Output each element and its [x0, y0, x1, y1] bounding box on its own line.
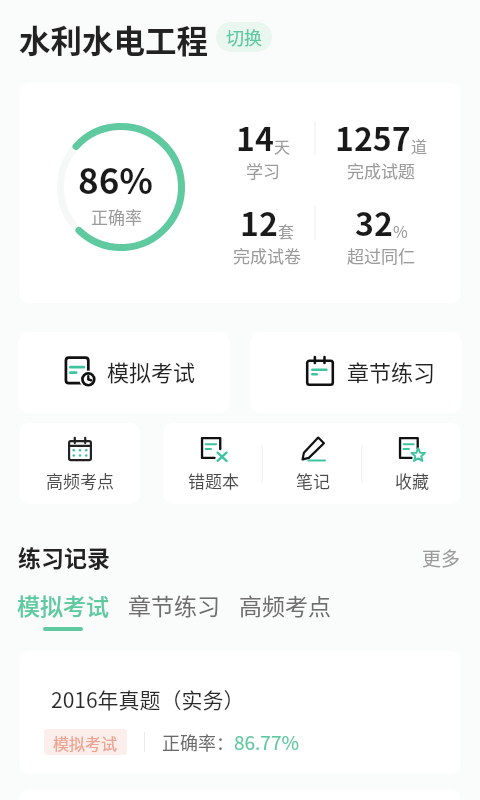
button[interactable]: 笔记: [263, 423, 362, 504]
staticText: 章节练习: [128, 588, 220, 621]
staticText: 完成试卷: [233, 243, 301, 268]
button[interactable]: 收藏: [362, 423, 461, 504]
staticText: 切换: [226, 24, 262, 50]
button[interactable]: 切换: [216, 22, 272, 52]
staticText: 错题本: [188, 468, 239, 493]
staticText: 正确率：: [162, 729, 234, 755]
other: 错题本: [201, 436, 227, 462]
staticText: 超过同仁: [347, 243, 415, 268]
staticText: 笔记: [296, 468, 330, 493]
staticText: 收藏: [395, 468, 429, 493]
staticText: 模拟考试: [17, 588, 109, 621]
staticText: 14: [236, 114, 274, 160]
staticText: 天: [274, 134, 291, 157]
staticText: %: [393, 219, 408, 242]
staticText: 86%: [78, 153, 154, 204]
staticText: 2016年真题（实务）: [51, 684, 245, 714]
button[interactable]: 章节练习: [126, 588, 222, 627]
staticText: 12: [240, 199, 278, 245]
staticText: 高频考点: [239, 588, 331, 621]
button[interactable]: 模拟考试: [18, 332, 230, 413]
staticText: 道: [411, 134, 428, 157]
staticText: 正确率: [91, 204, 142, 229]
staticText: 1257: [335, 114, 411, 160]
button[interactable]: 章节练习: [250, 332, 462, 413]
staticText: 章节练习: [347, 355, 436, 387]
staticText: 练习记录: [18, 540, 110, 573]
staticText: 模拟考试: [107, 355, 196, 387]
staticText: 完成试题: [347, 158, 415, 183]
button[interactable]: 2016年真题（实务）: [19, 651, 461, 774]
button[interactable]: 更多: [416, 540, 467, 576]
staticText: 更多: [422, 544, 461, 572]
staticText: 32: [355, 199, 393, 245]
staticText: 86.77%: [234, 728, 299, 756]
button[interactable]: 模拟考试: [15, 588, 111, 631]
staticText: 高频考点: [46, 468, 114, 493]
button[interactable]: 错题本: [163, 423, 263, 504]
other: 收藏: [399, 436, 425, 462]
staticText: 水利水电工程: [19, 16, 209, 62]
staticText: 套: [278, 219, 295, 242]
button[interactable]: 高频考点: [19, 423, 140, 504]
other: 模拟考试: [64, 355, 96, 387]
other: 章节练习: [304, 355, 336, 387]
other: 高频考点: [67, 436, 93, 462]
staticText: 模拟考试: [53, 731, 118, 754]
other: 笔记: [300, 436, 326, 462]
button[interactable]: 高频考点: [237, 588, 333, 627]
staticText: 学习: [246, 158, 280, 183]
